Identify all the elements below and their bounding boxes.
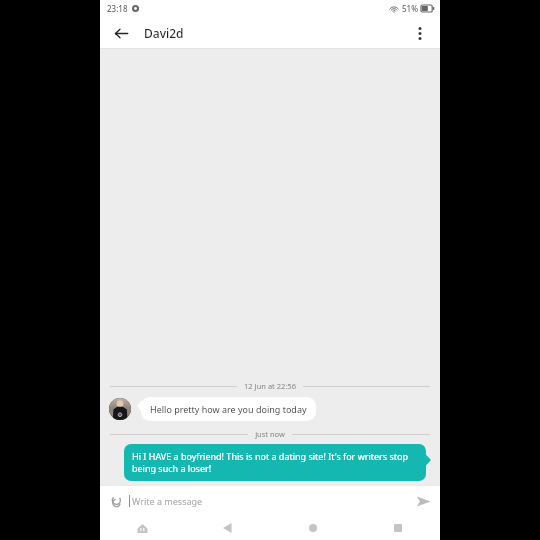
button[interactable]: Back bbox=[185, 516, 270, 540]
staticText: 23:18 bbox=[107, 3, 128, 14]
staticText: Hello pretty how are you doing today bbox=[150, 403, 307, 415]
button[interactable]: Hide keyboard bbox=[100, 516, 185, 540]
staticText: just now bbox=[255, 429, 285, 439]
button[interactable]: Home bbox=[270, 516, 355, 540]
button[interactable]: Send bbox=[411, 489, 435, 513]
button[interactable]: Attach file bbox=[100, 486, 440, 516]
staticText: Hi I HAVE a boyfriend! This is not a dat… bbox=[132, 450, 418, 475]
button[interactable]: Hi I HAVE a boyfriend! This is not a dat… bbox=[124, 444, 431, 481]
button[interactable]: Profile photo bbox=[109, 398, 131, 420]
button[interactable]: Recent apps bbox=[355, 516, 440, 540]
staticText: 51% bbox=[402, 3, 418, 14]
staticText: Write a message bbox=[132, 495, 203, 507]
button[interactable]: Back bbox=[106, 18, 136, 48]
staticText: 12 Jun at 22:56 bbox=[244, 381, 296, 391]
button[interactable]: Hello pretty how are you doing today bbox=[137, 397, 316, 421]
button[interactable]: Attach file bbox=[107, 492, 125, 510]
button[interactable]: More options bbox=[405, 18, 435, 48]
staticText: Davi2d bbox=[144, 25, 184, 41]
